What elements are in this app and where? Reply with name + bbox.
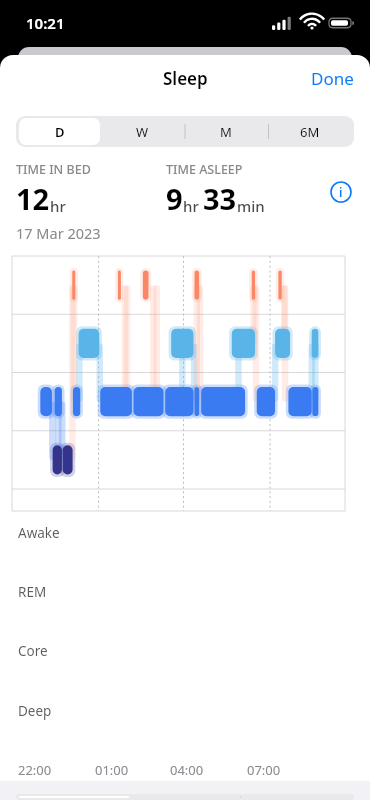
staticText: 17 Mar 2023 (16, 223, 101, 243)
staticText: 33 (203, 179, 237, 218)
staticText: REM (18, 583, 47, 601)
staticText: TIME ASLEEP (166, 161, 243, 178)
staticText: 01:00 (95, 761, 129, 779)
button[interactable]: More information (328, 179, 354, 205)
staticText: 12 (16, 179, 50, 218)
staticText: TIME IN BED (16, 161, 91, 178)
staticText: W (136, 123, 149, 141)
staticText: D (55, 123, 65, 141)
button[interactable]: Done (295, 59, 370, 98)
staticText: 07:00 (247, 761, 281, 779)
staticText: min (237, 196, 265, 216)
staticText: Done (311, 67, 354, 90)
staticText: Awake (18, 524, 60, 542)
staticText: M (220, 123, 232, 141)
button[interactable]: W (102, 118, 183, 145)
button[interactable]: D (19, 118, 100, 145)
staticText: Deep (18, 702, 52, 720)
button[interactable]: M (185, 118, 267, 145)
staticText: Core (18, 642, 48, 660)
staticText: 10:21 (26, 13, 65, 33)
staticText: hr (183, 196, 199, 216)
staticText: 9 (166, 179, 183, 218)
staticText: 22:00 (18, 761, 52, 779)
staticText: 04:00 (170, 761, 204, 779)
staticText: i (339, 184, 343, 200)
staticText: Sleep (163, 67, 208, 90)
staticText: 6M (300, 123, 320, 141)
button[interactable]: 6M (269, 118, 351, 145)
staticText: hr (50, 196, 66, 216)
